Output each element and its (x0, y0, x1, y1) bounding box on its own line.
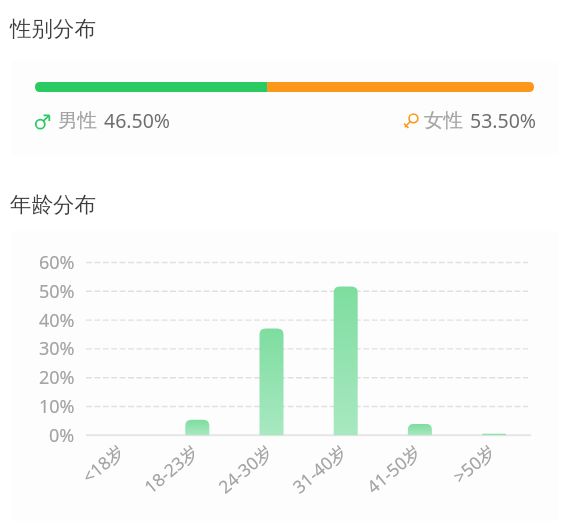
button[interactable]: 性别比例 (11, 61, 559, 155)
staticText: 46.50% (104, 107, 171, 134)
staticText: 男性 (58, 108, 97, 133)
staticText: 女性 (424, 108, 463, 133)
staticText: 53.50% (470, 107, 537, 134)
button[interactable]: 女性 (400, 107, 537, 134)
other: 性别比例 (35, 82, 534, 92)
staticText: 性别分布 (10, 15, 96, 42)
other: 女性 (403, 112, 420, 129)
button[interactable]: 男性 (34, 107, 171, 134)
other: 男性 (34, 113, 51, 130)
button[interactable]: 年龄分布柱状图 (11, 231, 559, 521)
staticText: 年龄分布 (10, 191, 96, 218)
other: 年龄分布柱状图 (11, 231, 559, 521)
